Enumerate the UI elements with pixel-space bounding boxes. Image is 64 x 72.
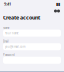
staticText: you@email.com [5, 45, 25, 48]
button[interactable]: Notifications [54, 9, 57, 12]
staticText: Create account [3, 14, 40, 21]
staticText: Email [3, 40, 9, 43]
button[interactable]: Profile [57, 9, 60, 12]
staticText: Name [3, 26, 10, 30]
staticText: Password [3, 53, 15, 57]
staticText: ▮▮ [56, 2, 60, 6]
staticText: 9:41 [4, 1, 11, 7]
staticText: Your name [5, 31, 19, 35]
